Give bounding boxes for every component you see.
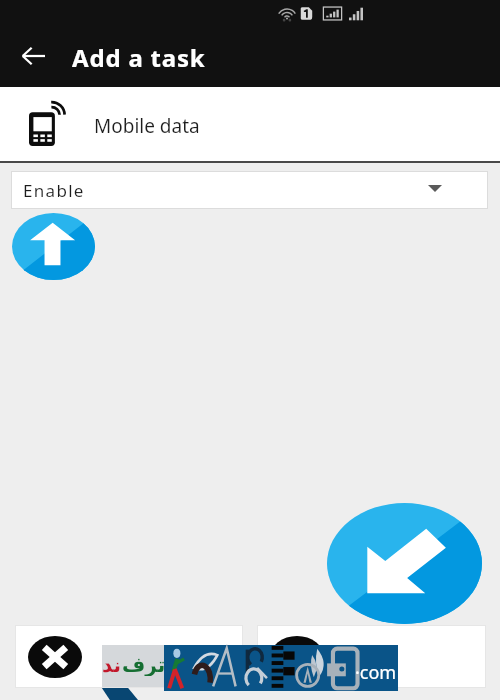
staticText: ند xyxy=(102,653,122,676)
button[interactable]: Move up xyxy=(12,213,95,280)
button[interactable]: Move down left xyxy=(327,503,482,624)
button[interactable]: Cancel xyxy=(15,625,243,688)
staticText: ترف xyxy=(122,653,164,676)
staticText: Enable xyxy=(23,179,85,202)
staticText: Mobile data xyxy=(94,113,200,139)
button[interactable]: Back xyxy=(0,27,66,87)
staticText: ·com xyxy=(355,660,397,685)
staticText: Add a task xyxy=(72,41,206,74)
button[interactable]: Enable xyxy=(11,171,488,209)
button[interactable]: Confirm xyxy=(257,625,486,688)
